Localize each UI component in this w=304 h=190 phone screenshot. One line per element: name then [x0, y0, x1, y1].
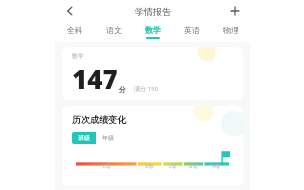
button[interactable]: 英语	[172, 22, 211, 42]
staticText: 学情报告	[135, 6, 171, 17]
button[interactable]: 语文	[94, 22, 133, 42]
button[interactable]: Back	[61, 2, 79, 20]
staticText: 数学	[145, 25, 161, 35]
staticText: C等	[168, 163, 177, 170]
button[interactable]: 全科	[55, 22, 94, 42]
button[interactable]: 数学	[133, 22, 172, 42]
staticText: 满分 150	[134, 85, 158, 93]
button[interactable]: 班级	[72, 132, 96, 144]
button[interactable]: 数学	[62, 47, 243, 100]
staticText: 年级	[102, 134, 114, 142]
staticText: 英语	[184, 25, 200, 35]
button[interactable]: 年级	[96, 132, 120, 144]
staticText: 物理	[223, 25, 239, 35]
staticText: A等	[212, 163, 221, 170]
staticText: 全科	[67, 25, 83, 35]
staticText: E等	[103, 163, 111, 170]
staticText: 数学	[72, 52, 84, 60]
staticText: 147	[72, 61, 118, 96]
staticText: 班级	[78, 134, 90, 142]
staticText: 历次成绩变化	[72, 114, 126, 125]
staticText: 语文	[106, 25, 122, 35]
staticText: D等	[145, 163, 154, 170]
staticText: 分	[119, 85, 126, 94]
button[interactable]: 物理	[211, 22, 250, 42]
button[interactable]: Add	[226, 2, 244, 20]
staticText: B等	[189, 163, 198, 170]
